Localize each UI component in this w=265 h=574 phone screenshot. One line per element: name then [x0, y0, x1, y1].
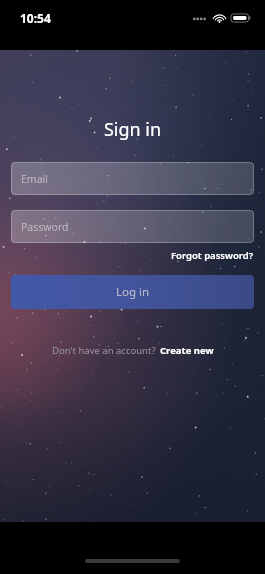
button[interactable]: Log in: [11, 275, 254, 309]
staticText: Sign in: [0, 117, 265, 142]
staticText: Email: [21, 172, 48, 186]
button[interactable]: Password: [11, 210, 254, 243]
staticText: Don't have an account?: [52, 344, 156, 357]
staticText: Password: [21, 220, 69, 234]
staticText: Log in: [116, 284, 150, 300]
button[interactable]: Create new: [160, 342, 214, 359]
staticText: 10:54: [20, 10, 51, 26]
button[interactable]: Email: [11, 162, 254, 195]
other: Home indicator: [85, 559, 180, 563]
button[interactable]: Forgot password?: [171, 247, 254, 264]
